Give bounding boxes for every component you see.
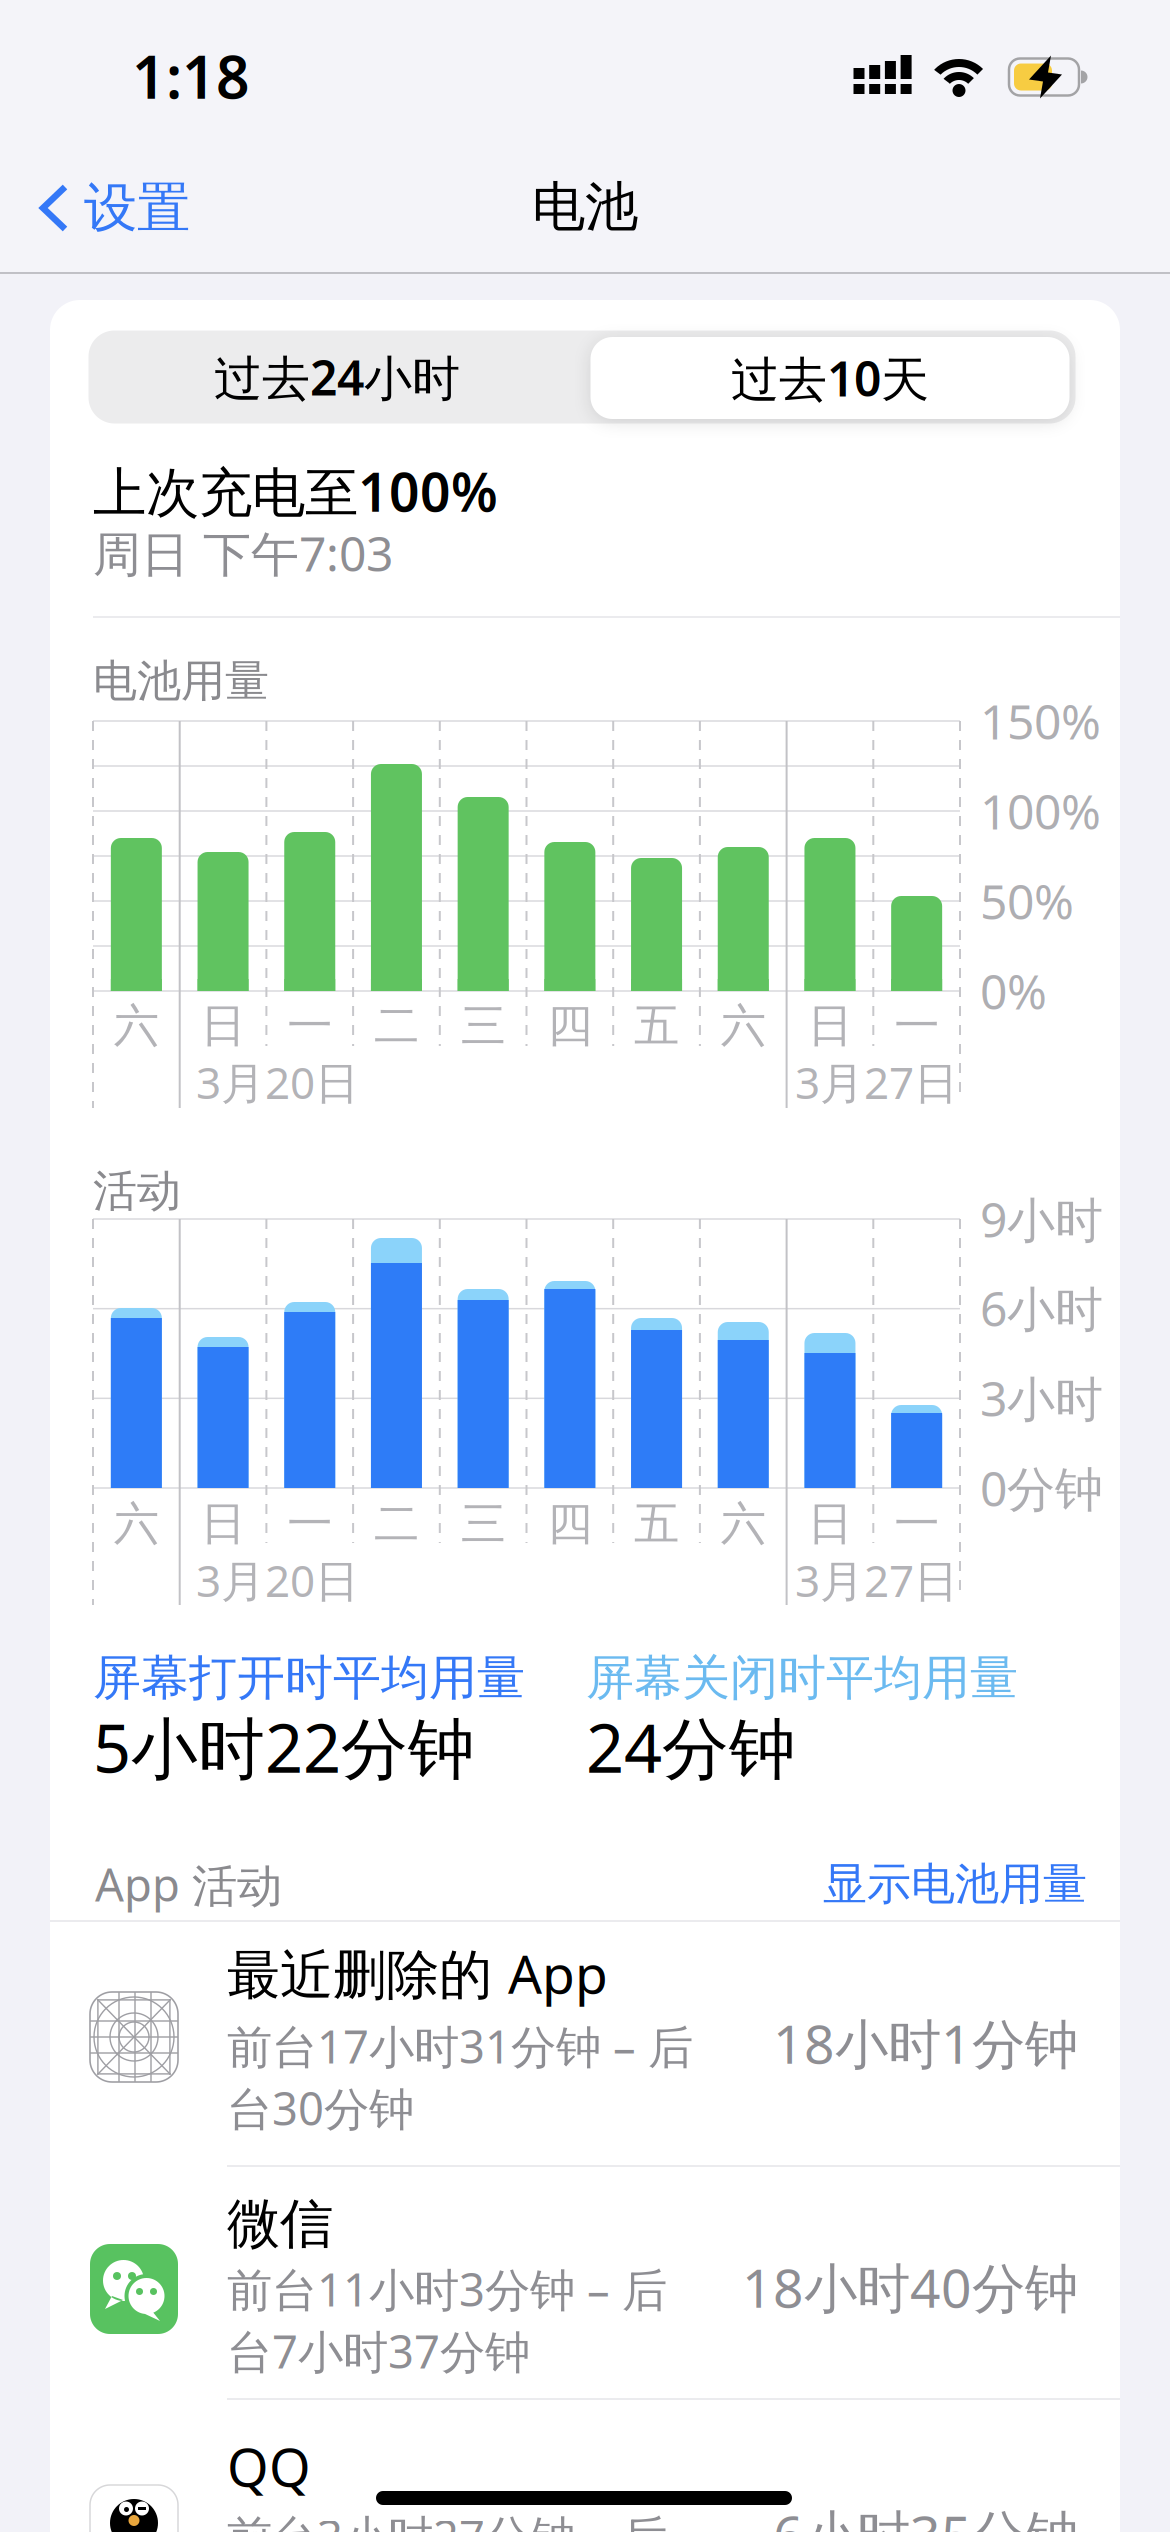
staticText: 六 xyxy=(721,998,766,1054)
staticText: 上次充电至100% xyxy=(93,456,498,526)
button[interactable]: 过去24小时 xyxy=(92,330,582,423)
staticText: 3月27日 xyxy=(795,1053,958,1111)
staticText: QQ xyxy=(227,2431,311,2501)
staticText: 前台11小时3分钟 – 后 xyxy=(227,2259,667,2319)
staticText: 五 xyxy=(634,1496,679,1552)
staticText: 3月27日 xyxy=(795,1551,958,1609)
staticText: 二 xyxy=(374,998,419,1054)
staticText: 24分钟 xyxy=(586,1703,796,1791)
staticText: 最近删除的 App xyxy=(227,1938,608,2008)
staticText: 0% xyxy=(980,959,1047,1023)
staticText: 3小时 xyxy=(980,1366,1103,1430)
staticText: 一 xyxy=(287,998,332,1054)
staticText: 五 xyxy=(634,998,679,1054)
staticText: 18小时40分钟 xyxy=(742,2252,1078,2322)
button[interactable]: 显示电池用量 xyxy=(823,1857,1087,1911)
staticText: 一 xyxy=(287,1496,332,1552)
staticText: 三 xyxy=(461,998,506,1054)
staticText: 150% xyxy=(980,689,1101,753)
button[interactable]: 微信 xyxy=(50,2166,1120,2399)
staticText: 电池用量 xyxy=(93,654,269,708)
staticText: 前台17小时31分钟 – 后 xyxy=(227,2016,693,2076)
staticText: 9小时 xyxy=(980,1187,1103,1251)
staticText: 台30分钟 xyxy=(227,2078,414,2138)
staticText: 四 xyxy=(547,998,592,1054)
staticText: 0分钟 xyxy=(980,1456,1103,1520)
staticText: 日 xyxy=(807,1496,852,1552)
staticText: 3月20日 xyxy=(196,1053,359,1111)
staticText: 六 xyxy=(114,1496,159,1552)
staticText: 1:18 xyxy=(132,37,250,115)
button[interactable]: 最近删除的 App xyxy=(50,1921,1120,2166)
staticText: 日 xyxy=(201,998,246,1054)
staticText: 屏幕打开时平均用量 xyxy=(93,1648,525,1707)
button[interactable]: 过去10天 xyxy=(590,337,1069,419)
staticText: 三 xyxy=(461,1496,506,1552)
staticText: 一 xyxy=(894,998,939,1054)
staticText: 六 xyxy=(114,998,159,1054)
staticText: 5小时22分钟 xyxy=(93,1703,475,1791)
staticText: 屏幕关闭时平均用量 xyxy=(586,1648,1018,1707)
staticText: 50% xyxy=(980,869,1074,933)
staticText: 一 xyxy=(894,1496,939,1552)
button[interactable]: QQ xyxy=(50,2399,1120,2532)
staticText: 前台3小时27分钟 – 后 xyxy=(227,2506,667,2532)
staticText: 台7小时37分钟 xyxy=(227,2321,530,2381)
staticText: 电池 xyxy=(532,174,638,240)
staticText: 100% xyxy=(980,779,1101,843)
staticText: 日 xyxy=(807,998,852,1054)
button[interactable]: 设置 xyxy=(38,178,190,238)
staticText: 过去24小时 xyxy=(214,345,460,409)
staticText: App 活动 xyxy=(95,1854,282,1914)
staticText: 6小时35分钟 xyxy=(773,2499,1078,2532)
staticText: 6小时 xyxy=(980,1276,1103,1340)
staticText: 活动 xyxy=(93,1164,181,1218)
staticText: 六 xyxy=(721,1496,766,1552)
staticText: 微信 xyxy=(227,2191,333,2257)
staticText: 设置 xyxy=(84,175,190,241)
staticText: 3月20日 xyxy=(196,1551,359,1609)
staticText: 18小时1分钟 xyxy=(773,2008,1078,2078)
staticText: 显示电池用量 xyxy=(823,1857,1087,1911)
staticText: 过去10天 xyxy=(731,346,929,410)
staticText: 周日 下午7:03 xyxy=(93,521,393,585)
staticText: 日 xyxy=(201,1496,246,1552)
staticText: 四 xyxy=(547,1496,592,1552)
staticText: 二 xyxy=(374,1496,419,1552)
